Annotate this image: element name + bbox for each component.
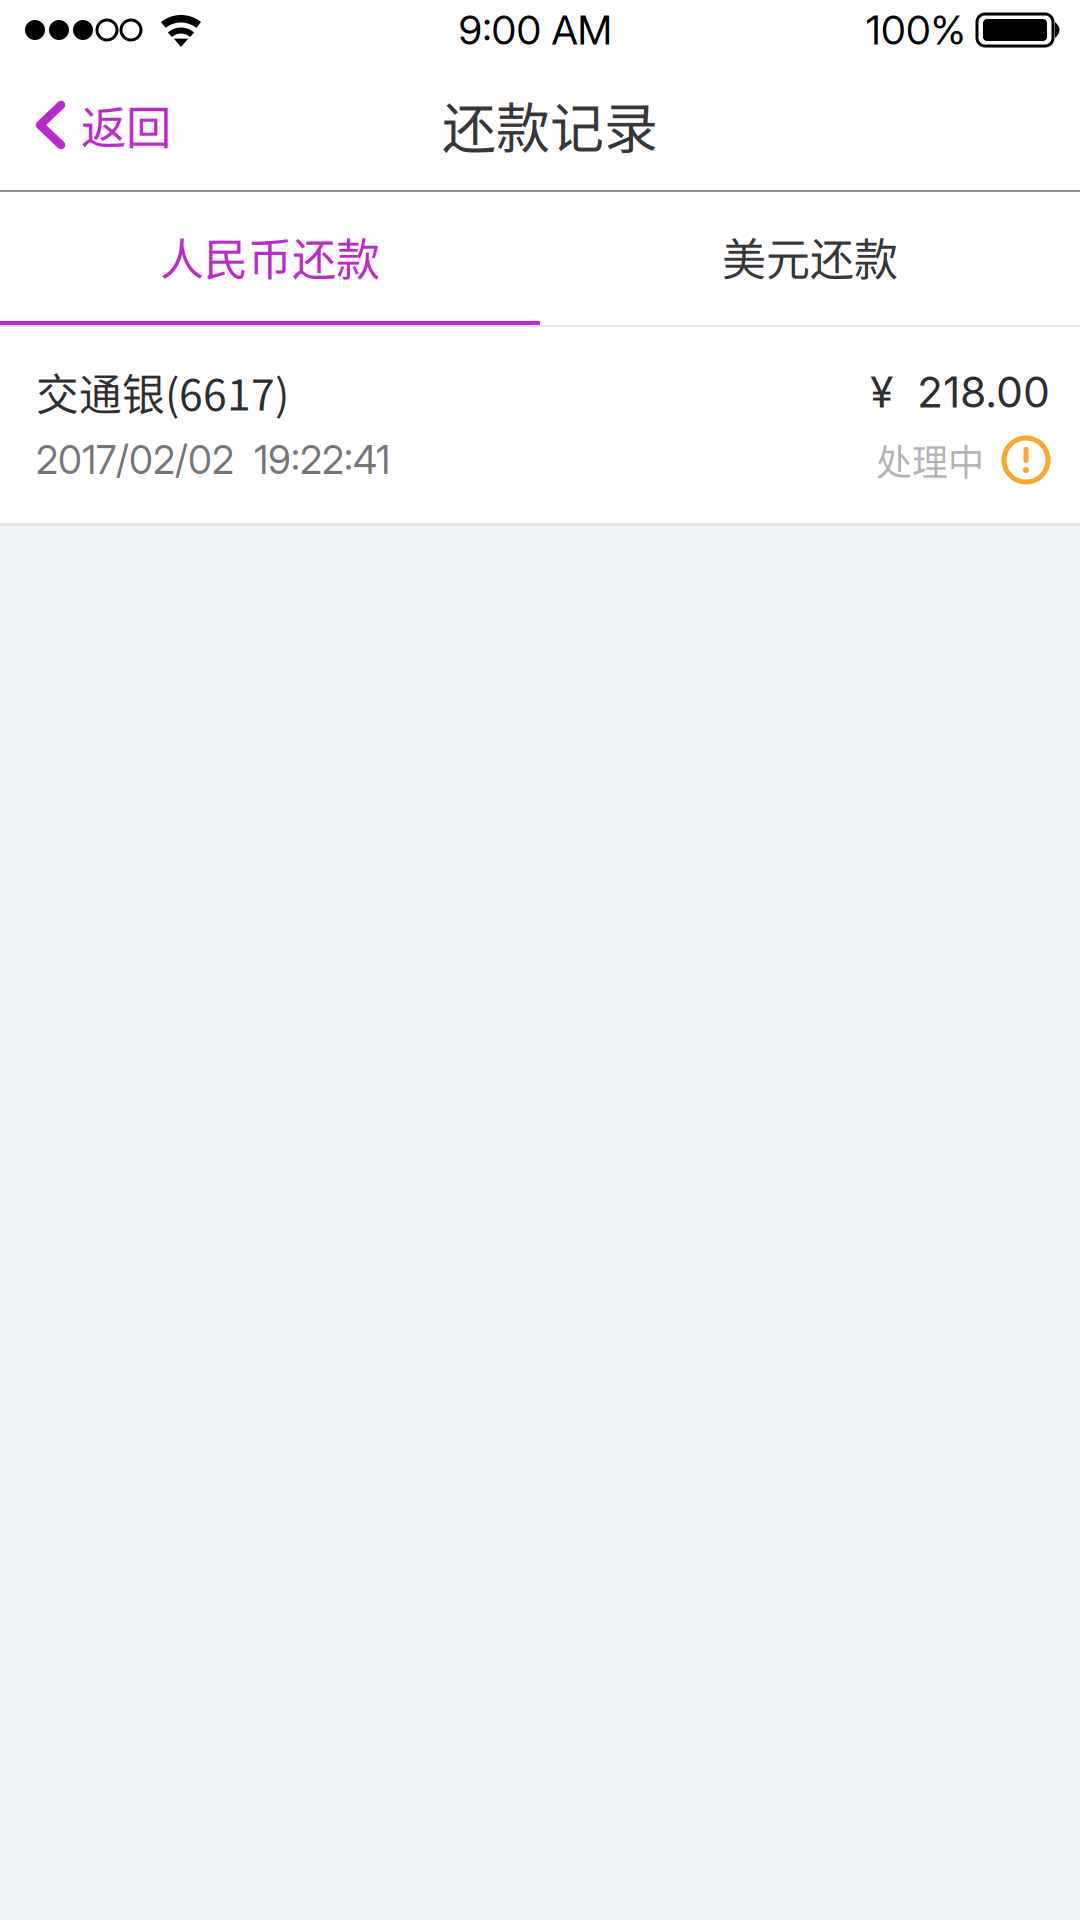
staticText: 返回 <box>81 92 171 158</box>
staticText: 2017/02/02 19:22:41 <box>36 437 390 483</box>
staticText: 交通银(6617) <box>36 361 289 423</box>
button[interactable]: 美元还款 <box>540 192 1080 321</box>
staticText: 100% <box>866 6 965 54</box>
staticText: 美元还款 <box>722 225 898 288</box>
button[interactable]: 人民币还款 <box>0 192 540 321</box>
staticText: 人民币还款 <box>160 225 380 288</box>
staticText: 处理中 <box>876 434 984 486</box>
button[interactable]: 返回 <box>0 60 195 190</box>
staticText: ¥ 218.00 <box>870 366 1050 418</box>
button[interactable]: 交通银(6617) <box>0 327 1080 523</box>
staticText: 还款记录 <box>442 86 658 164</box>
staticText: 9:00 AM <box>458 6 611 54</box>
